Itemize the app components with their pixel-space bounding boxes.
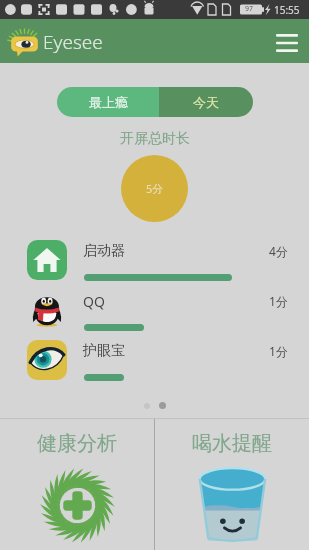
staticText: 护眼宝: [83, 342, 125, 360]
button[interactable]: Menu: [266, 23, 308, 63]
staticText: 健康分析: [37, 431, 117, 456]
button[interactable]: QQ: [0, 290, 309, 340]
button[interactable]: 健康分析: [0, 419, 154, 550]
staticText: 4分: [269, 243, 288, 259]
staticText: 喝水提醒: [192, 431, 272, 456]
staticText: 15:55: [274, 3, 300, 17]
staticText: 1分: [269, 343, 288, 359]
staticText: 开屏总时长: [120, 130, 190, 148]
staticText: Eyesee: [43, 29, 103, 55]
button[interactable]: 启动器: [0, 240, 309, 290]
staticText: QQ: [83, 292, 105, 311]
button[interactable]: 护眼宝: [0, 340, 309, 390]
staticText: 5分: [146, 181, 164, 196]
staticText: 97: [245, 4, 254, 14]
staticText: 今天: [193, 94, 219, 110]
button[interactable]: 今天: [159, 87, 253, 117]
staticText: 1分: [269, 293, 288, 309]
button[interactable]: 最上瘾: [57, 87, 159, 117]
staticText: 启动器: [83, 242, 125, 260]
button[interactable]: 喝水提醒: [155, 419, 309, 550]
staticText: 最上瘾: [89, 94, 128, 110]
